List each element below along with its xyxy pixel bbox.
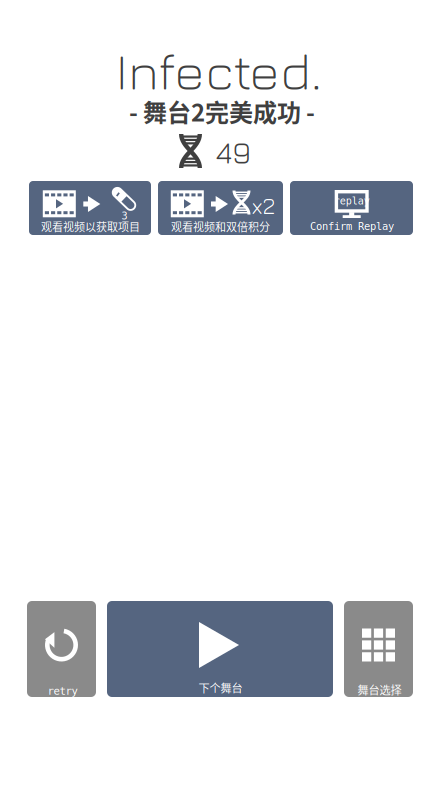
staticText: x2: [251, 192, 275, 219]
staticText: Infected.: [116, 39, 322, 101]
button[interactable]: replay: [290, 181, 413, 235]
staticText: 3: [121, 210, 127, 222]
button[interactable]: 舞台选择: [344, 601, 413, 697]
staticText: 下个舞台: [198, 679, 242, 696]
staticText: 观看视频和双倍积分: [171, 218, 270, 234]
button[interactable]: 下个舞台: [107, 601, 333, 697]
staticText: Confirm Replay: [310, 220, 394, 232]
button[interactable]: 3: [29, 181, 151, 235]
staticText: replay: [334, 195, 370, 207]
staticText: 舞台选择: [357, 681, 401, 698]
staticText: retry: [47, 685, 77, 697]
staticText: 49: [215, 134, 250, 170]
button[interactable]: retry: [27, 601, 96, 697]
staticText: - 舞台2完美成功 -: [129, 94, 315, 128]
button[interactable]: x2: [158, 181, 283, 235]
staticText: 观看视频以获取项目: [41, 218, 140, 234]
